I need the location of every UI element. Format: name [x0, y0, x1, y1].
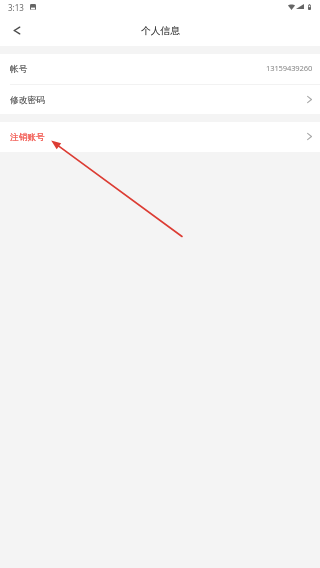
staticText: 13159439260: [266, 63, 313, 73]
staticText: 个人信息: [141, 25, 180, 37]
staticText: 修改密码: [10, 95, 45, 106]
staticText: 帐号: [10, 64, 28, 75]
button[interactable]: Back: [0, 18, 30, 46]
staticText: 3:13: [8, 2, 24, 13]
button[interactable]: 帐号: [0, 54, 320, 84]
button[interactable]: 修改密码: [0, 85, 320, 114]
button[interactable]: 注销账号: [0, 122, 320, 152]
staticText: 注销账号: [10, 132, 45, 143]
